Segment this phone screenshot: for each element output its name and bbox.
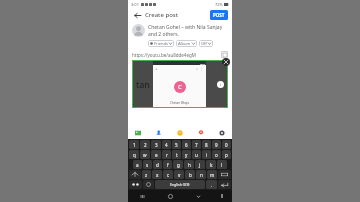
staticText: p: [225, 152, 228, 158]
button[interactable]: Preview: [221, 51, 228, 58]
button[interactable]: POST: [210, 10, 228, 20]
button[interactable]: i: [202, 150, 211, 159]
button[interactable]: n: [196, 170, 206, 179]
staticText: 0: [225, 142, 228, 148]
staticText: 3: [155, 142, 158, 148]
staticText: t: [176, 152, 178, 158]
button[interactable]: Album: [176, 40, 197, 47]
button[interactable]: English (US): [155, 180, 205, 189]
button[interactable]: u: [192, 150, 201, 159]
button[interactable]: Symbols: [129, 180, 142, 189]
button[interactable]: Remove: [222, 58, 230, 66]
staticText: 2: [144, 142, 147, 148]
button[interactable]: Enter: [218, 180, 231, 189]
button[interactable]: o: [212, 150, 221, 159]
staticText: tan: [136, 78, 150, 90]
button[interactable]: Back: [132, 10, 142, 20]
button[interactable]: h: [184, 160, 194, 169]
button[interactable]: t: [172, 150, 181, 159]
staticText: x: [156, 172, 159, 178]
button[interactable]: Live video: [217, 128, 227, 138]
staticText: b: [189, 172, 192, 178]
button[interactable]: x: [152, 170, 162, 179]
staticText: C: [178, 83, 182, 91]
button[interactable]: p: [222, 150, 231, 159]
staticText: i: [220, 82, 222, 87]
button[interactable]: Emoji: [143, 180, 154, 189]
button[interactable]: Hide keyboard: [184, 190, 212, 202]
button[interactable]: y: [182, 150, 191, 159]
button[interactable]: 9: [212, 140, 221, 149]
staticText: u: [195, 152, 198, 158]
button[interactable]: 0: [222, 140, 231, 149]
button[interactable]: g: [173, 160, 183, 169]
button[interactable]: d: [153, 160, 162, 169]
staticText: j: [199, 162, 201, 168]
staticText: a: [136, 162, 139, 168]
staticText: g: [177, 162, 180, 168]
button[interactable]: l: [217, 160, 227, 169]
button[interactable]: 4: [162, 140, 171, 149]
button[interactable]: m: [207, 170, 217, 179]
button[interactable]: c: [163, 170, 173, 179]
button[interactable]: Check in: [196, 128, 206, 138]
staticText: w: [143, 152, 147, 158]
staticText: English (US): [170, 182, 190, 187]
button[interactable]: r: [162, 150, 171, 159]
button[interactable]: b: [185, 170, 195, 179]
staticText: 5: [175, 142, 178, 148]
button[interactable]: 6: [182, 140, 191, 149]
button[interactable]: 8: [202, 140, 211, 149]
button[interactable]: v: [174, 170, 184, 179]
button[interactable]: w: [140, 150, 150, 159]
button[interactable]: 7: [192, 140, 201, 149]
button[interactable]: tan: [132, 60, 228, 108]
staticText: ⌕ ⋮: [196, 66, 204, 71]
staticText: Chetan Bhoja: [153, 101, 206, 105]
button[interactable]: k: [206, 160, 216, 169]
staticText: .: [211, 182, 213, 188]
button[interactable]: 1: [129, 140, 139, 149]
button[interactable]: 5: [172, 140, 181, 149]
button[interactable]: 2: [140, 140, 150, 149]
staticText: Off: [201, 41, 207, 46]
button[interactable]: Photo: [133, 128, 143, 138]
staticText: 72%: [215, 2, 223, 7]
button[interactable]: Home: [156, 190, 184, 202]
staticText: Friends: [154, 41, 168, 46]
staticText: https://youtu.be/au8dde4egM: [132, 52, 221, 58]
staticText: 9: [215, 142, 218, 148]
staticText: Chetan Gohel – with Nila Sanjay and 2 ot…: [148, 24, 228, 38]
button[interactable]: Friends: [148, 40, 174, 47]
button[interactable]: 3: [151, 140, 161, 149]
staticText: n: [200, 172, 203, 178]
button[interactable]: Backspace: [218, 170, 231, 179]
button[interactable]: s: [143, 160, 152, 169]
button[interactable]: Off: [199, 40, 213, 47]
button[interactable]: Keyboard layout: [212, 190, 232, 202]
button[interactable]: e: [151, 150, 161, 159]
staticText: c: [167, 172, 170, 178]
staticText: h: [188, 162, 191, 168]
button[interactable]: Shift: [129, 170, 141, 179]
staticText: z: [145, 172, 148, 178]
staticText: 1: [133, 142, 136, 148]
staticText: o: [215, 152, 218, 158]
button[interactable]: q: [129, 150, 139, 159]
staticText: f: [167, 162, 169, 168]
staticText: 3:01: [131, 2, 139, 7]
staticText: +: [155, 66, 158, 71]
staticText: 3:01: [200, 62, 205, 65]
button[interactable]: f: [163, 160, 172, 169]
button[interactable]: Tag people: [154, 128, 164, 138]
button[interactable]: .: [206, 180, 217, 189]
staticText: POST: [213, 12, 225, 18]
button[interactable]: a: [133, 160, 142, 169]
button[interactable]: Recents: [128, 190, 156, 202]
button[interactable]: j: [195, 160, 205, 169]
staticText: 8: [205, 142, 208, 148]
button[interactable]: z: [142, 170, 151, 179]
staticText: l: [221, 162, 223, 168]
button[interactable]: Feeling: [175, 128, 185, 138]
staticText: v: [178, 172, 181, 178]
